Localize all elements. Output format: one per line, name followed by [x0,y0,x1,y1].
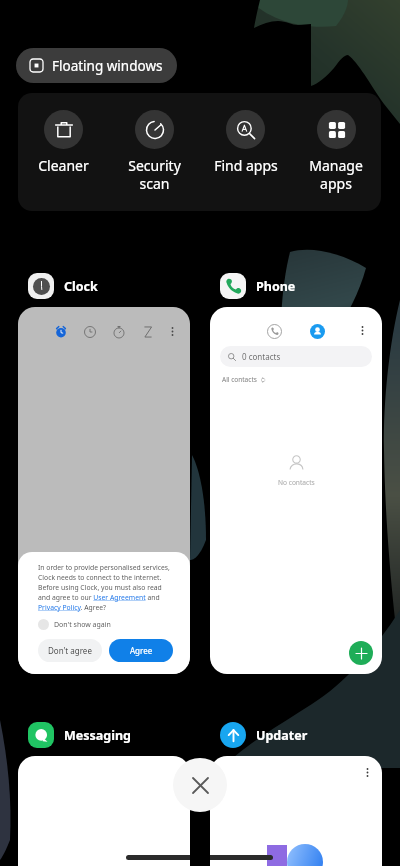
button[interactable]: In order to provide personalised service… [18,307,190,674]
button[interactable]: Don't agree [38,639,102,662]
staticText: No contacts [278,478,315,487]
button[interactable] [18,756,190,866]
button[interactable]: Manage apps [291,93,381,211]
button[interactable]: Add contact [349,641,373,665]
button[interactable]: Cleaner [18,93,109,211]
staticText: In order to provide personalised service… [38,563,173,612]
button[interactable]: Agree [109,639,173,662]
staticText: Updater [256,727,308,744]
button[interactable]: Updater [210,719,308,751]
staticText: Cleaner [38,156,89,175]
staticText: 0 contacts [242,351,281,362]
staticText: Clock [64,278,98,295]
button[interactable]: Phone [210,270,296,302]
staticText: Security scan [128,156,181,193]
staticText: Don't show again [54,620,111,630]
staticText: Phone [256,278,296,295]
button[interactable]: 0 contacts [210,307,382,674]
staticText: Messaging [64,727,131,744]
button[interactable]: Close all [173,758,227,812]
button[interactable]: Clock [18,270,98,302]
button[interactable]: Messaging [18,719,131,751]
button[interactable]: Floating windows [16,48,177,83]
staticText: Floating windows [52,57,163,75]
staticText: Don't agree [48,645,92,656]
staticText: Find apps [214,156,278,175]
button[interactable]: Find apps [200,93,291,211]
staticText: Agree [130,645,153,656]
button[interactable]: Security scan [109,93,200,211]
staticText: All contacts [222,375,257,384]
button[interactable] [210,756,382,866]
staticText: Manage apps [309,156,363,193]
